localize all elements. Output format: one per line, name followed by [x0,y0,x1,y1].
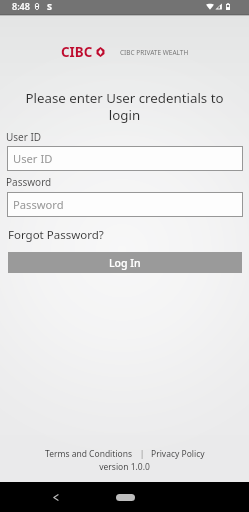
button[interactable]: User ID [7,146,243,171]
button[interactable]: Log In [8,252,242,273]
staticText: User ID [6,130,42,144]
button[interactable]: Terms and Conditions [45,448,133,460]
staticText: Please enter User credentials to login [14,89,235,124]
button[interactable]: Back [45,487,65,507]
staticText: CIBC [61,43,93,61]
button[interactable]: Home [105,487,145,507]
staticText: 8:48 [12,0,30,12]
staticText: CIBC PRIVATE WEALTH [120,48,189,57]
staticText: S [47,0,52,12]
button[interactable]: Password [7,192,243,217]
staticText: | [133,448,151,460]
staticText: User ID [13,151,53,166]
staticText: Password [13,197,64,212]
button[interactable]: Forgot Password? [8,227,104,243]
staticText: Password [6,175,52,189]
staticText: Log In [109,256,141,270]
button[interactable]: Privacy Policy [151,448,205,460]
staticText: version 1.0.0 [0,461,249,473]
